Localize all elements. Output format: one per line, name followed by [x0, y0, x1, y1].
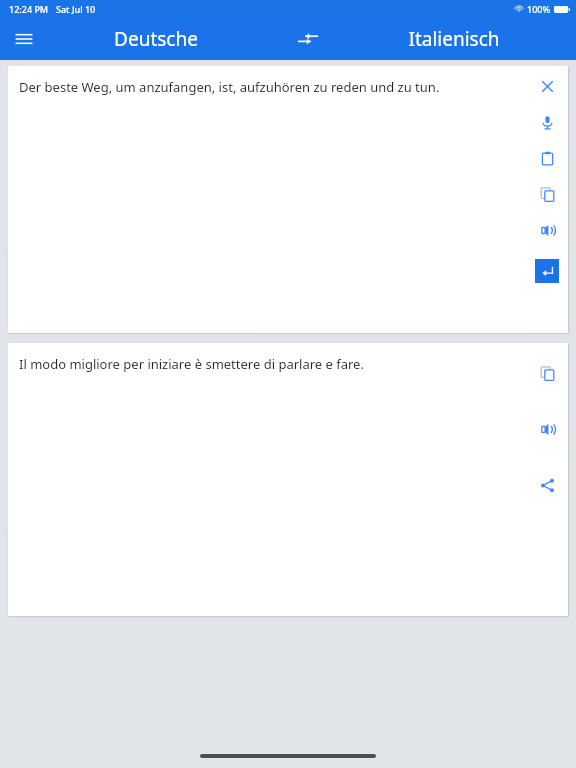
button[interactable]: Listen [532, 414, 562, 444]
button[interactable]: Translate [535, 259, 559, 283]
staticText: Il modo migliore per iniziare è smettere… [19, 355, 364, 373]
button[interactable]: Voice input [532, 107, 562, 137]
button[interactable]: Copy [532, 358, 562, 388]
staticText: 12:24 PM [9, 3, 49, 15]
button[interactable]: Copy [532, 179, 562, 209]
button[interactable]: Paste [532, 143, 562, 173]
button[interactable]: Menu [6, 21, 42, 57]
staticText: Der beste Weg, um anzufangen, ist, aufzu… [19, 78, 440, 96]
button[interactable]: Listen [532, 215, 562, 245]
staticText: Italienisch [408, 26, 500, 52]
staticText: Deutsche [114, 26, 198, 52]
button[interactable]: Swap languages [288, 19, 328, 59]
button[interactable]: Clear [532, 71, 562, 101]
button[interactable]: Italienisch [368, 18, 540, 60]
button[interactable]: Deutsche [70, 18, 242, 60]
staticText: 100% [527, 3, 551, 15]
staticText: Sat Jul 10 [56, 3, 96, 15]
button[interactable]: Share [532, 470, 562, 500]
